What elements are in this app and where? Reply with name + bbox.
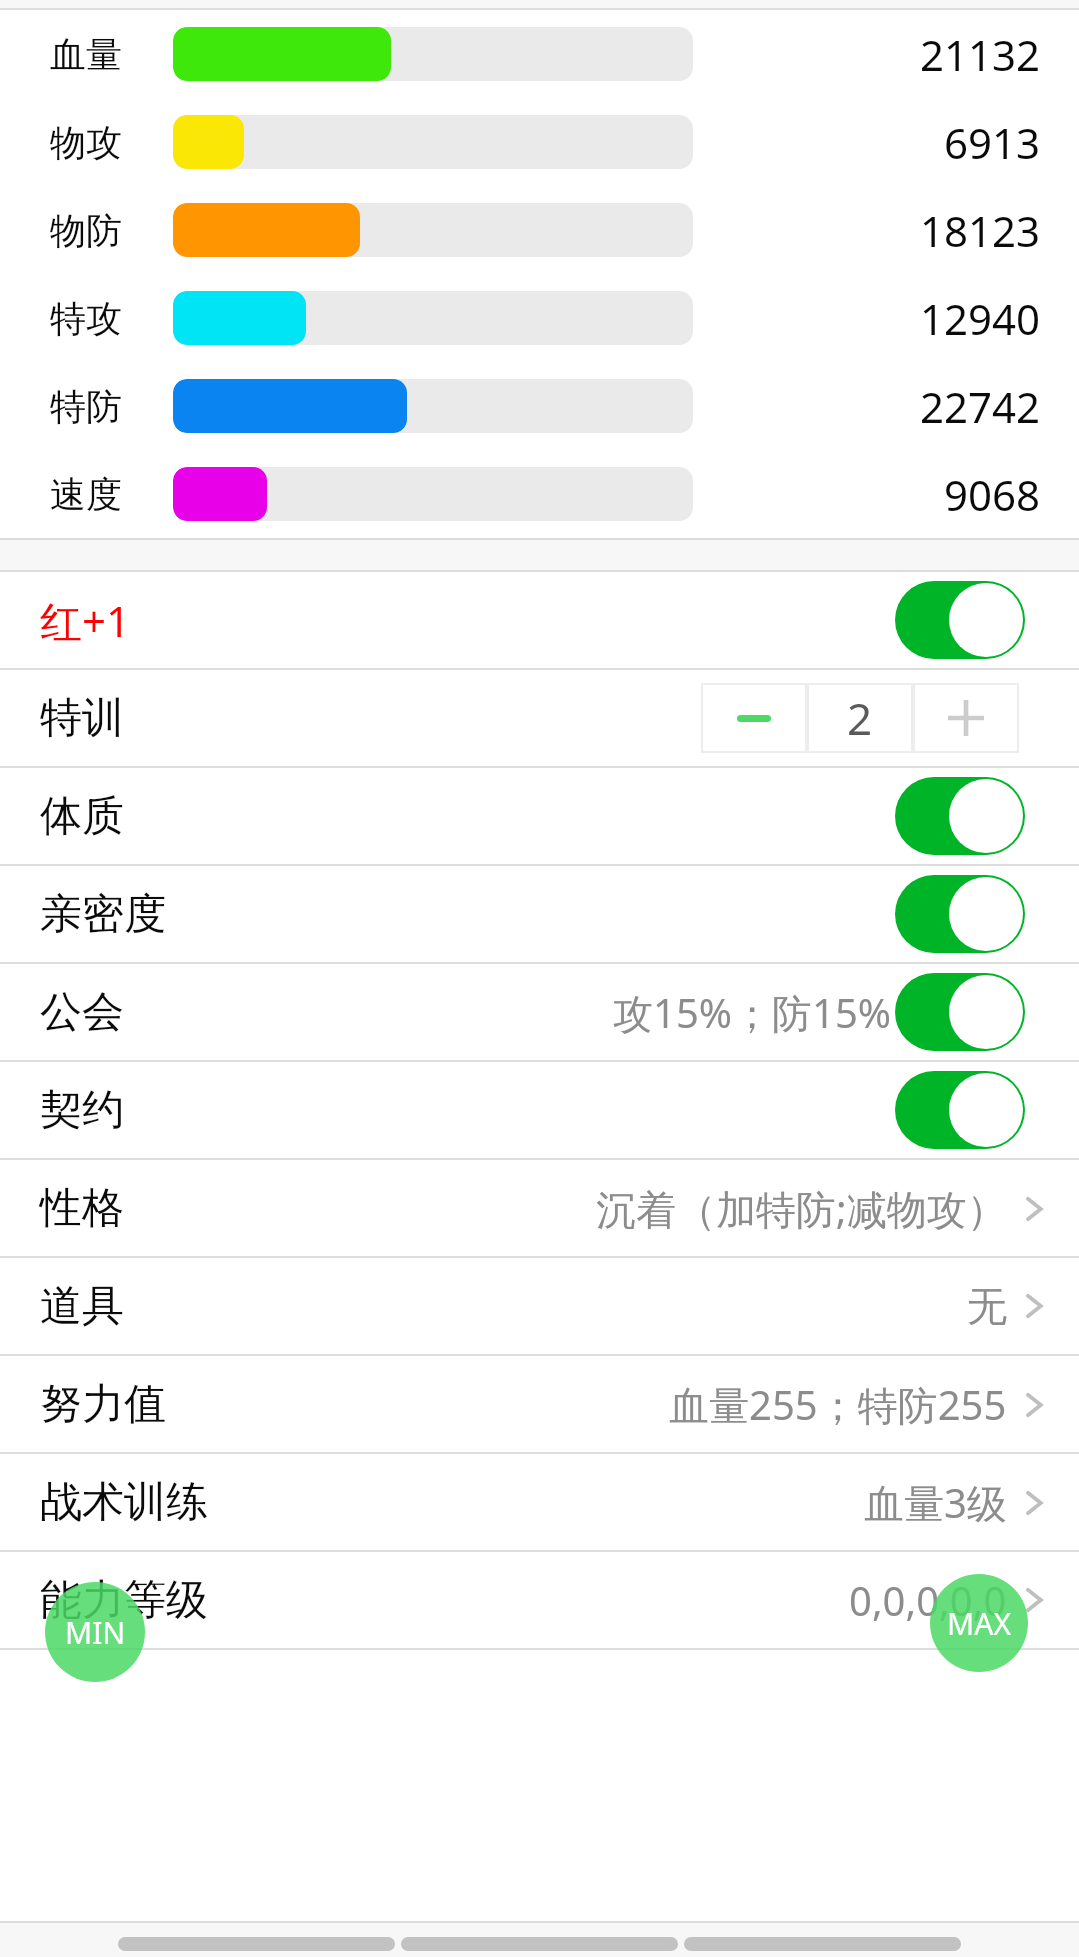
button[interactable]: 努力值: [0, 1356, 1079, 1452]
staticText: 血量3级: [864, 1475, 1007, 1530]
button[interactable]: 能力等级: [0, 1552, 1079, 1648]
button[interactable]: Toggle on: [895, 581, 1025, 659]
staticText: 12940: [920, 290, 1041, 347]
button[interactable]: Toggle on: [895, 875, 1025, 953]
staticText: 努力值: [40, 1378, 166, 1431]
button[interactable]: Toggle on: [895, 777, 1025, 855]
staticText: 道具: [40, 1280, 124, 1333]
staticText: 22742: [920, 378, 1041, 435]
button[interactable]: Increase: [915, 685, 1017, 751]
button[interactable]: 特训: [0, 670, 1079, 766]
button[interactable]: 体质: [0, 768, 1079, 864]
button[interactable]: Toggle on: [895, 1071, 1025, 1149]
staticText: 物防: [50, 208, 122, 253]
staticText: 血量255；特防255: [669, 1377, 1007, 1432]
staticText: MAX: [947, 1603, 1011, 1644]
button[interactable]: MIN: [45, 1582, 145, 1682]
button[interactable]: Decrease: [703, 685, 805, 751]
staticText: 物攻: [50, 120, 122, 165]
staticText: 21132: [920, 26, 1041, 83]
staticText: 速度: [50, 472, 122, 517]
button[interactable]: Toggle on: [895, 973, 1025, 1051]
button[interactable]: MAX: [930, 1574, 1028, 1672]
staticText: 9068: [944, 466, 1041, 523]
button[interactable]: 红+1: [0, 572, 1079, 668]
staticText: 特攻: [50, 296, 122, 341]
staticText: 红+1: [40, 592, 131, 649]
staticText: 0,0,0,0,0: [849, 1573, 1007, 1627]
staticText: MIN: [65, 1612, 126, 1653]
button[interactable]: 战术训练: [0, 1454, 1079, 1550]
button[interactable]: 公会: [0, 964, 1079, 1060]
staticText: 6913: [944, 114, 1041, 171]
button[interactable]: 道具: [0, 1258, 1079, 1354]
staticText: 特训: [40, 692, 124, 745]
staticText: 体质: [40, 790, 124, 843]
staticText: 亲密度: [40, 888, 166, 941]
button[interactable]: 性格: [0, 1160, 1079, 1256]
staticText: 18123: [920, 202, 1041, 259]
button[interactable]: 契约: [0, 1062, 1079, 1158]
staticText: 攻15%；防15%: [613, 985, 891, 1040]
staticText: 战术训练: [40, 1476, 208, 1529]
staticText: 特防: [50, 384, 122, 429]
staticText: 契约: [40, 1084, 124, 1137]
button[interactable]: 亲密度: [0, 866, 1079, 962]
staticText: 2: [847, 688, 873, 748]
staticText: 血量: [50, 32, 122, 77]
staticText: 公会: [40, 986, 124, 1039]
staticText: 能力等级: [40, 1574, 208, 1627]
staticText: 无: [967, 1281, 1007, 1331]
staticText: 沉着（加特防;减物攻）: [596, 1181, 1007, 1236]
staticText: 性格: [40, 1182, 124, 1235]
